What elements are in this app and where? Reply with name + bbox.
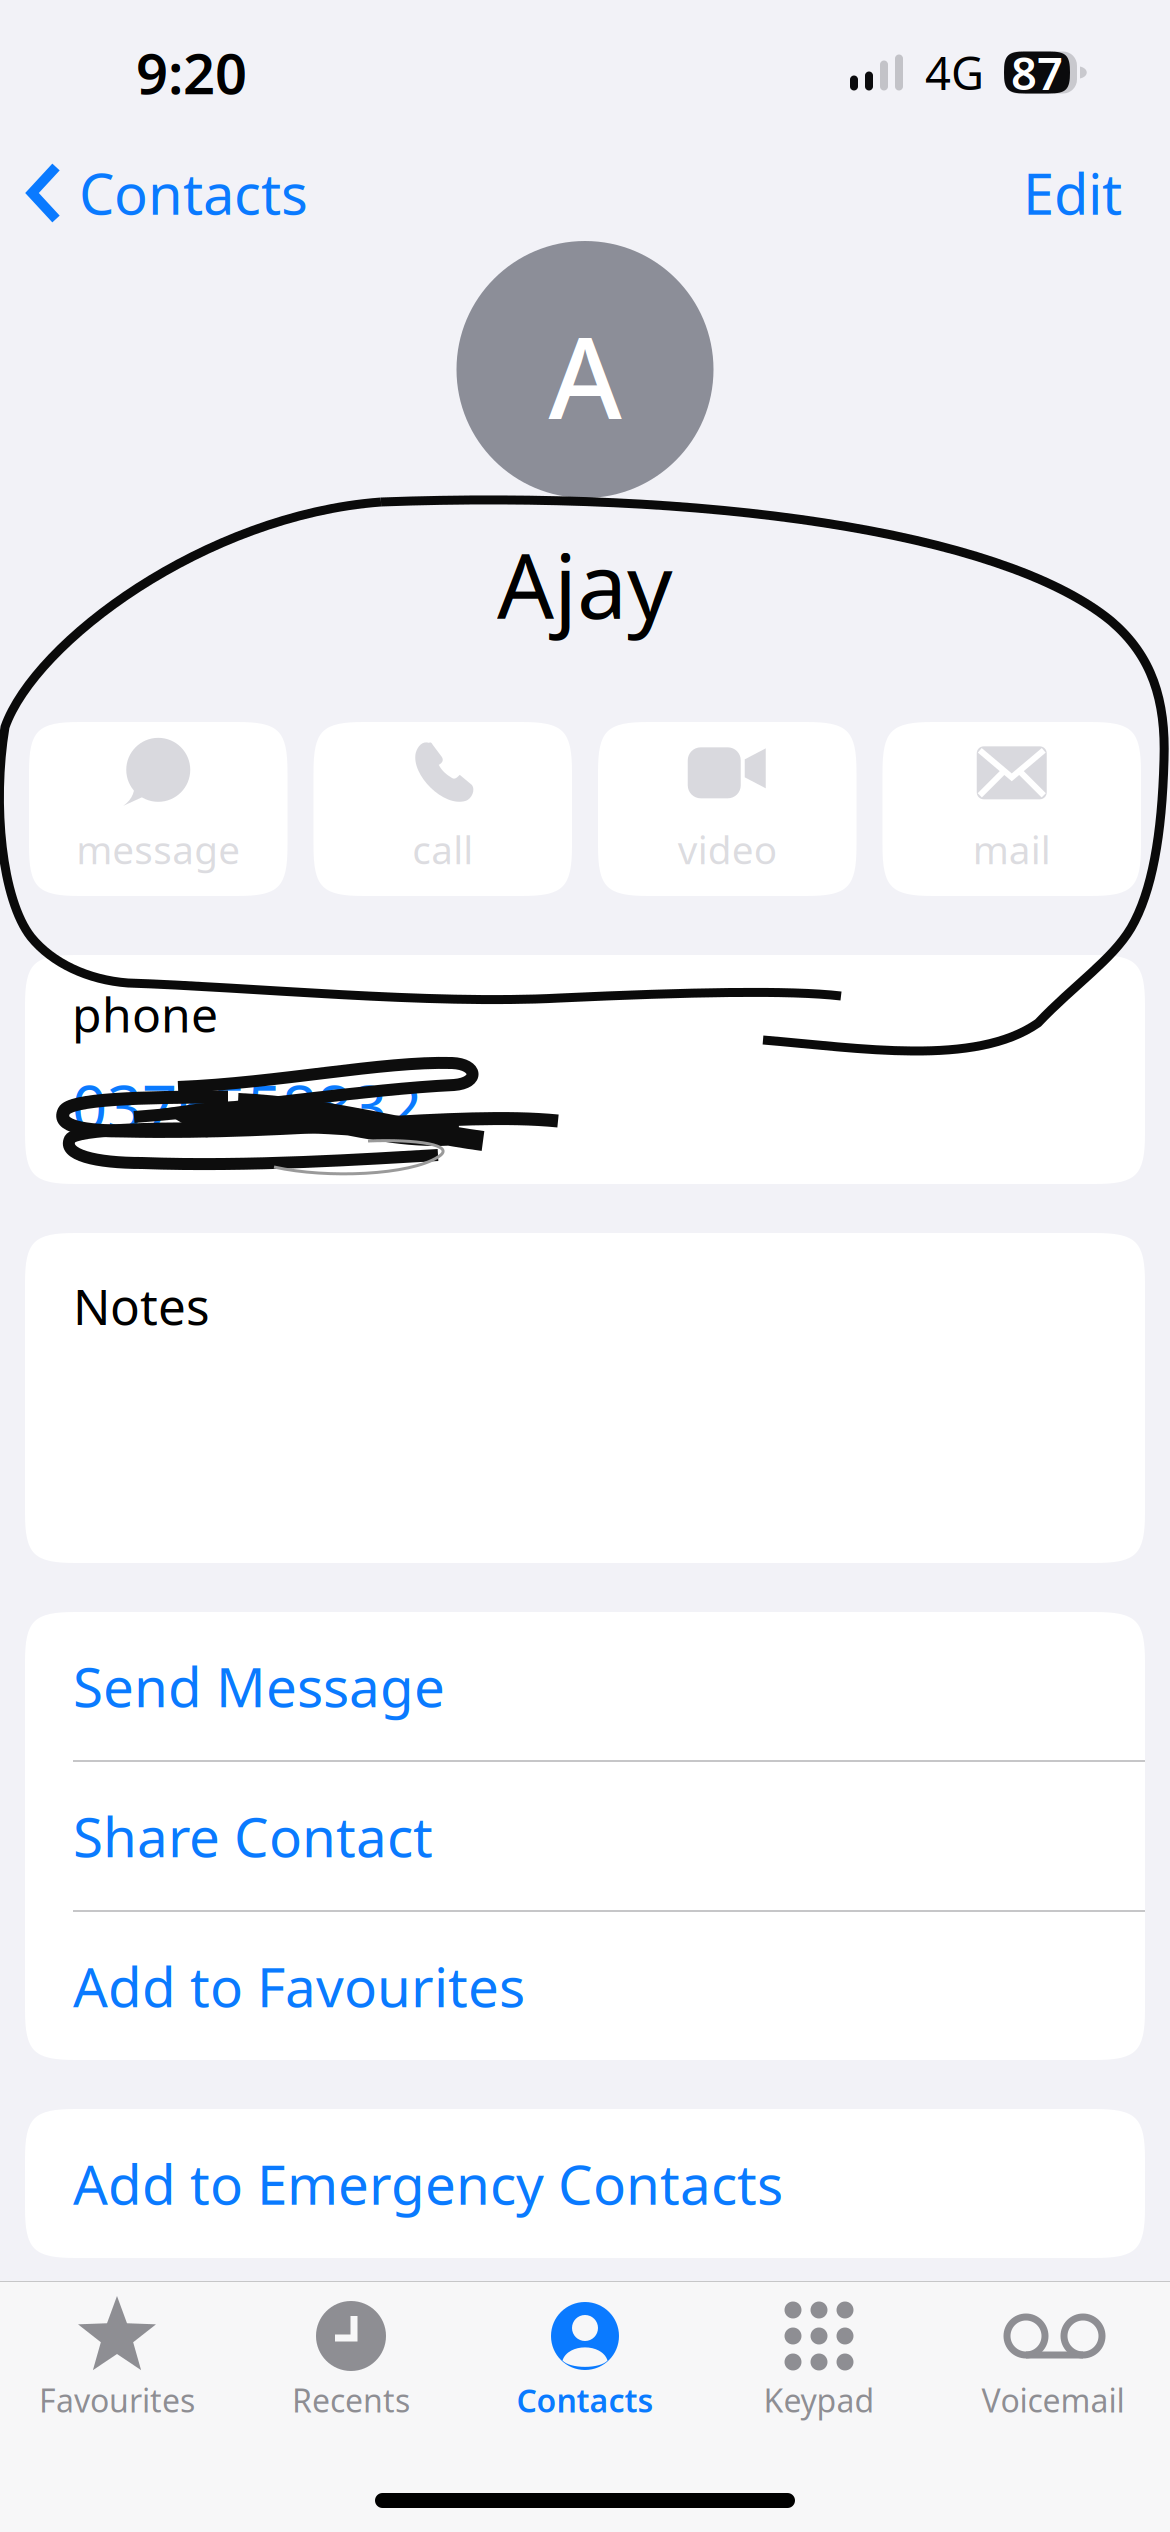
button[interactable]: Keypad	[702, 2294, 936, 2422]
button[interactable]: Contacts	[0, 145, 332, 241]
button[interactable]: Edit	[993, 145, 1152, 241]
staticText: 4G	[925, 42, 984, 103]
staticText: Notes	[73, 1273, 210, 1338]
staticText: Keypad	[763, 2379, 874, 2421]
button[interactable]: Add to Favourites	[25, 1912, 1145, 2060]
staticText: Contacts	[516, 2379, 653, 2421]
staticText: call	[412, 824, 473, 875]
button[interactable]: Share Contact	[25, 1762, 1145, 1910]
staticText: 0376558832	[72, 1065, 422, 1147]
button[interactable]: Add to Emergency Contacts	[25, 2109, 1145, 2258]
button[interactable]: Favourites	[0, 2294, 234, 2422]
staticText: Recents	[292, 2379, 410, 2421]
button[interactable]: Contacts	[468, 2294, 702, 2422]
button[interactable]: mail	[882, 722, 1141, 896]
button[interactable]: Recents	[234, 2294, 468, 2422]
staticText: Add to Favourites	[73, 1950, 525, 2022]
staticText: Add to Emergency Contacts	[73, 2147, 783, 2220]
staticText: Contacts	[79, 156, 308, 230]
button[interactable]: phone	[25, 955, 1145, 1184]
staticText: A	[548, 301, 621, 450]
staticText: phone	[72, 982, 218, 1046]
staticText: 87	[1011, 42, 1063, 103]
staticText: video	[678, 824, 777, 875]
staticText: Favourites	[39, 2379, 195, 2421]
staticText: message	[76, 824, 240, 875]
staticText: Voicemail	[981, 2379, 1124, 2421]
staticText: Edit	[1023, 156, 1122, 230]
staticText: Ajay	[497, 525, 673, 643]
button[interactable]: Voicemail	[936, 2294, 1170, 2422]
staticText: 9:20	[136, 35, 247, 110]
staticText: Send Message	[73, 1650, 445, 1722]
button[interactable]: call	[313, 722, 572, 896]
staticText: Share Contact	[73, 1800, 433, 1872]
button[interactable]: video	[598, 722, 856, 896]
staticText: mail	[973, 824, 1051, 875]
button[interactable]: Send Message	[25, 1612, 1145, 1760]
button[interactable]: message	[29, 722, 287, 896]
